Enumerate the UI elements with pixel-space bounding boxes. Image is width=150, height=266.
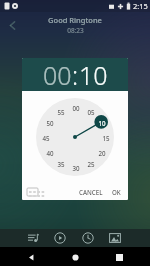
staticText: 10 — [98, 119, 106, 127]
staticText: 05 — [87, 108, 95, 116]
staticText: 35 — [57, 160, 65, 168]
button[interactable]: Recents — [110, 248, 128, 266]
button[interactable]: 10 — [79, 58, 108, 91]
staticText: 25 — [87, 160, 95, 168]
staticText: 15 — [102, 134, 110, 142]
staticText: Good Ringtone — [48, 15, 102, 25]
button[interactable]: OK — [109, 186, 124, 198]
staticText: OK — [112, 188, 121, 196]
button[interactable]: 00 — [43, 58, 72, 91]
staticText: 30 — [72, 164, 80, 172]
staticText: : — [72, 58, 79, 91]
button[interactable]: Artwork — [106, 230, 124, 246]
button[interactable]: Play — [51, 230, 69, 246]
staticText: 50 — [46, 119, 54, 127]
staticText: 00 — [72, 104, 80, 112]
button[interactable]: Home — [66, 248, 84, 266]
staticText: 45 — [42, 134, 50, 142]
staticText: 40 — [46, 149, 54, 157]
staticText: 55 — [57, 108, 65, 116]
button[interactable]: Select minutes — [36, 98, 114, 176]
button[interactable]: Back — [0, 13, 24, 37]
button[interactable]: Switch to keyboard input — [25, 186, 39, 198]
button[interactable]: Back — [22, 248, 40, 266]
button[interactable]: CANCEL — [76, 186, 106, 198]
staticText: CANCEL — [79, 188, 103, 196]
staticText: 20 — [98, 149, 106, 157]
staticText: 08:23 — [67, 26, 84, 35]
button[interactable]: Playlist — [24, 230, 42, 246]
button[interactable]: Timer — [79, 230, 97, 246]
staticText: 2:15 — [133, 1, 148, 11]
